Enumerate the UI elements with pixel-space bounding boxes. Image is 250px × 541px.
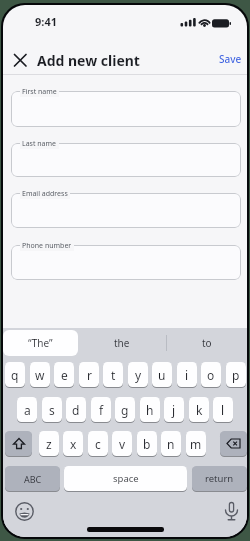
button[interactable]: o [201, 362, 221, 387]
button[interactable]: k [189, 397, 209, 422]
staticText: w [35, 367, 45, 383]
button[interactable]: x [63, 431, 83, 456]
staticText: d [72, 402, 80, 418]
button[interactable]: b [137, 431, 157, 456]
staticText: ABC [24, 473, 42, 485]
button[interactable]: s [42, 397, 62, 422]
staticText: to [202, 336, 212, 350]
staticText: l [221, 402, 225, 418]
button[interactable] [222, 501, 241, 523]
staticText: 9:41 [35, 14, 57, 29]
button[interactable]: e [54, 362, 74, 387]
button[interactable] [14, 501, 35, 522]
staticText: m [190, 436, 202, 452]
staticText: i [185, 367, 189, 383]
staticText: r [87, 367, 92, 383]
staticText: p [232, 367, 240, 383]
staticText: j [172, 402, 176, 418]
button[interactable]: m [186, 431, 206, 456]
button[interactable]: c [88, 431, 108, 456]
staticText: s [49, 402, 55, 418]
button[interactable] [220, 431, 247, 456]
button[interactable] [5, 431, 32, 456]
staticText: Last name [22, 139, 57, 149]
button[interactable]: a [17, 397, 37, 422]
button[interactable]: p [226, 362, 246, 387]
staticText: Phone number [22, 241, 72, 251]
staticText: h [146, 402, 154, 418]
button[interactable]: Save [213, 49, 247, 69]
staticText: space [113, 472, 139, 485]
staticText: t [111, 367, 116, 383]
staticText: g [121, 402, 129, 418]
button[interactable]: to [166, 330, 247, 356]
staticText: x [70, 436, 77, 452]
staticText: o [207, 367, 215, 383]
button[interactable]: g [115, 397, 135, 422]
button[interactable]: h [140, 397, 160, 422]
staticText: c [95, 436, 101, 452]
button[interactable]: q [5, 362, 25, 387]
button[interactable]: y [128, 362, 148, 387]
staticText: return [205, 472, 234, 485]
staticText: v [119, 436, 126, 452]
button[interactable]: t [103, 362, 123, 387]
staticText: “The” [28, 336, 53, 350]
button[interactable]: space [64, 466, 187, 491]
button[interactable] [11, 91, 241, 127]
staticText: k [196, 402, 203, 418]
button[interactable] [13, 53, 28, 68]
button[interactable]: z [39, 431, 59, 456]
button[interactable] [11, 143, 241, 177]
button[interactable]: d [66, 397, 86, 422]
staticText: u [158, 367, 166, 383]
button[interactable]: v [112, 431, 132, 456]
staticText: b [143, 436, 151, 452]
button[interactable] [11, 245, 241, 280]
button[interactable]: return [192, 466, 247, 491]
staticText: z [46, 436, 52, 452]
staticText: First name [22, 87, 57, 97]
button[interactable]: n [161, 431, 181, 456]
staticText: Save [219, 52, 242, 66]
button[interactable]: l [213, 397, 233, 422]
button[interactable]: u [152, 362, 172, 387]
staticText: q [11, 367, 19, 383]
button[interactable]: ABC [5, 466, 60, 491]
button[interactable]: “The” [3, 330, 78, 356]
button[interactable]: j [164, 397, 184, 422]
staticText: Email address [22, 189, 68, 199]
button[interactable]: f [91, 397, 111, 422]
staticText: Add new client [37, 51, 140, 70]
staticText: n [167, 436, 175, 452]
staticText: f [99, 402, 104, 418]
button[interactable]: the [78, 330, 166, 356]
staticText: y [135, 367, 142, 383]
staticText: the [114, 336, 130, 350]
button[interactable]: r [79, 362, 99, 387]
button[interactable]: w [30, 362, 50, 387]
button[interactable]: i [177, 362, 197, 387]
button[interactable] [11, 193, 241, 228]
staticText: e [61, 367, 68, 383]
staticText: a [24, 402, 31, 418]
